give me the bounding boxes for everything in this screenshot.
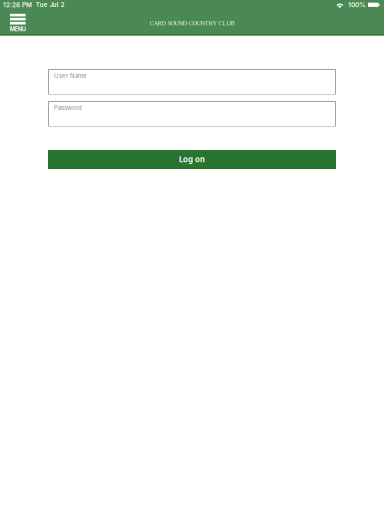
- staticText: 100%: [348, 1, 366, 9]
- button[interactable]: Log on: [48, 150, 336, 169]
- staticText: MENU: [10, 26, 26, 33]
- button[interactable]: Menu: [6, 13, 30, 33]
- staticText: User Name: [54, 72, 87, 79]
- staticText: Log on: [179, 154, 205, 164]
- staticText: Tue Jul 2: [36, 1, 65, 8]
- staticText: Password: [54, 104, 82, 111]
- staticText: 12:26 PM: [3, 1, 32, 9]
- staticText: CARD SOUND COUNTRY CLUB: [149, 20, 234, 27]
